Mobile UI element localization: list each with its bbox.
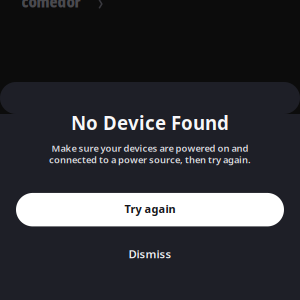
staticText: comedor [21, 0, 80, 12]
button[interactable]: Dismiss [0, 238, 300, 270]
staticText: connected to a power source, then try ag… [49, 153, 251, 166]
staticText: Try again [124, 201, 175, 216]
staticText: Make sure your devices are powered on an… [51, 142, 248, 155]
staticText: Dismiss [128, 246, 171, 262]
button[interactable]: Try again [16, 193, 284, 226]
staticText: No Device Found [71, 110, 229, 135]
